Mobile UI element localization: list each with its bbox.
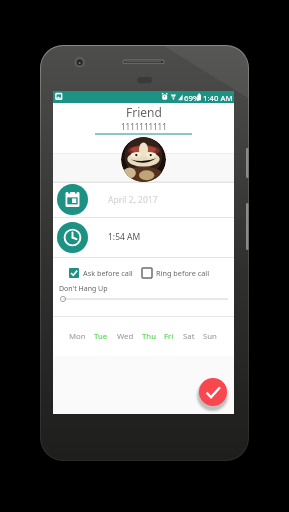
- staticText: Tue: [94, 331, 108, 342]
- button[interactable]: Mon: [67, 327, 88, 346]
- staticText: Don't Hang Up: [59, 284, 108, 294]
- button[interactable]: Ring before call: [142, 268, 210, 278]
- button[interactable]: Sun: [201, 327, 219, 346]
- staticText: Sun: [203, 331, 217, 342]
- staticText: 1111111111: [121, 121, 167, 132]
- button[interactable]: Contact photo: [121, 137, 166, 182]
- button[interactable]: Don't Hang Up slider: [53, 294, 234, 304]
- staticText: April 2, 2017: [108, 194, 158, 206]
- button[interactable]: April 2, 2017: [53, 182, 234, 217]
- staticText: 1:54 AM: [108, 231, 141, 243]
- staticText: Thu: [142, 331, 156, 342]
- button[interactable]: Sat: [181, 327, 197, 346]
- staticText: Wed: [117, 331, 134, 342]
- staticText: Friend: [126, 104, 162, 120]
- staticText: 69%: [184, 93, 200, 104]
- staticText: 1:40 AM: [203, 93, 233, 104]
- button[interactable]: 1:54 AM: [53, 217, 234, 257]
- staticText: Ask before call: [83, 268, 133, 278]
- staticText: Ring before call: [156, 268, 210, 278]
- button[interactable]: Ask before call: [69, 268, 133, 278]
- button[interactable]: Wed: [115, 327, 136, 346]
- staticText: Sat: [183, 331, 195, 342]
- button[interactable]: Fri: [162, 327, 176, 346]
- button[interactable]: Tue: [92, 327, 110, 346]
- staticText: Mon: [69, 331, 86, 342]
- staticText: Fri: [164, 331, 174, 342]
- button[interactable]: Thu: [140, 327, 158, 346]
- button[interactable]: Confirm: [199, 378, 227, 406]
